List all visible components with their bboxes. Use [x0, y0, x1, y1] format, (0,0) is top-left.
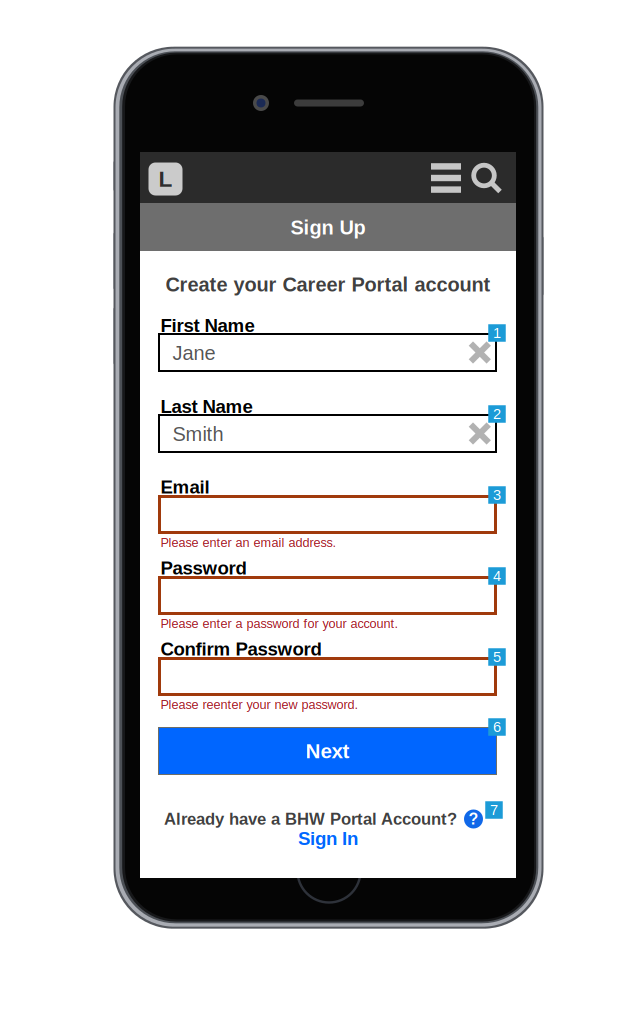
- staticText: Create your Career Portal account: [165, 273, 490, 296]
- button[interactable]: Help: [464, 809, 483, 828]
- staticText: 6: [493, 719, 501, 735]
- staticText: Next: [305, 739, 349, 763]
- staticText: Password: [160, 558, 246, 578]
- button[interactable]: Menu: [431, 163, 461, 193]
- staticText: Sign Up: [290, 216, 365, 239]
- button[interactable]: Home: [148, 162, 182, 195]
- staticText: ?: [468, 810, 478, 828]
- staticText: Sign In: [298, 828, 358, 849]
- staticText: First Name: [160, 315, 254, 336]
- staticText: 7: [490, 802, 498, 818]
- staticText: 2: [493, 406, 501, 422]
- button[interactable]: Search: [471, 162, 503, 194]
- staticText: Please enter an email address.: [160, 535, 336, 550]
- staticText: Last Name: [160, 396, 252, 417]
- staticText: 5: [493, 649, 501, 665]
- button[interactable]: Sign In: [298, 828, 358, 849]
- staticText: Email: [160, 477, 209, 497]
- staticText: 4: [493, 568, 501, 584]
- staticText: 1: [493, 325, 501, 341]
- staticText: Jane: [172, 342, 215, 364]
- button[interactable]: Clear Last Name: [469, 422, 491, 445]
- button[interactable]: Next: [158, 727, 497, 775]
- staticText: Smith: [172, 423, 223, 445]
- staticText: L: [158, 166, 172, 192]
- staticText: Please enter a password for your account…: [160, 616, 398, 631]
- button[interactable]: Clear First Name: [469, 341, 491, 364]
- staticText: 3: [493, 487, 501, 503]
- staticText: Confirm Password: [160, 639, 321, 659]
- staticText: Already have a BHW Portal Account?: [164, 810, 457, 828]
- staticText: Please reenter your new password.: [160, 697, 358, 712]
